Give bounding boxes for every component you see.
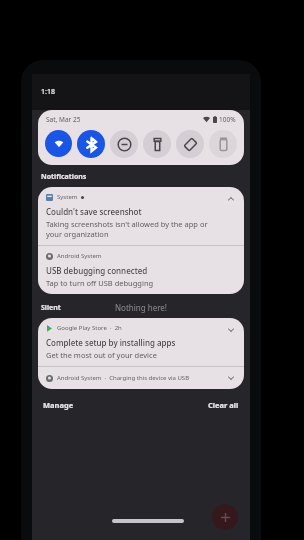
button[interactable]: Auto-rotate	[176, 130, 204, 158]
staticText: Manage	[43, 400, 74, 410]
button[interactable]: Google Play Store · 2h	[38, 318, 244, 366]
staticText: Android System	[57, 252, 102, 260]
button[interactable]: Bluetooth	[77, 130, 105, 158]
staticText: 100%	[219, 115, 236, 124]
staticText: Get the most out of your device	[46, 350, 157, 360]
staticText: USB debugging connected	[46, 265, 148, 276]
other: Collapse	[227, 195, 235, 203]
button[interactable]: Battery Saver	[209, 130, 237, 158]
button[interactable]: Clear all	[206, 398, 241, 412]
other: Expand	[227, 374, 235, 382]
staticText: Tap to turn off USB debugging	[46, 278, 154, 288]
staticText: Clear all	[208, 400, 239, 410]
staticText: 1:18	[41, 87, 55, 97]
staticText: Android System · Charging this device vi…	[57, 374, 190, 382]
staticText: Complete setup by installing apps	[46, 337, 176, 348]
other: Expand	[227, 326, 235, 334]
staticText: Couldn't save screenshot	[46, 206, 142, 217]
staticText: Sat, Mar 25	[46, 115, 81, 124]
button[interactable]: Manage	[41, 398, 76, 412]
button[interactable]: Wi-Fi	[45, 130, 72, 157]
staticText: Taking screenshots isn't allowed by the …	[46, 219, 223, 239]
button[interactable]: Do not disturb	[110, 130, 138, 158]
button[interactable]: Add	[212, 504, 238, 530]
staticText: Nothing here!	[115, 302, 168, 313]
staticText: Google Play Store · 2h	[57, 324, 122, 332]
staticText: Notifications	[41, 172, 87, 182]
staticText: Silent	[41, 303, 61, 313]
button[interactable]: Android System · Charging this device vi…	[38, 367, 244, 389]
button[interactable]: Flashlight	[143, 130, 171, 158]
button[interactable]: Android System	[38, 246, 244, 294]
staticText: System	[57, 193, 78, 201]
button[interactable]: System	[38, 187, 244, 245]
